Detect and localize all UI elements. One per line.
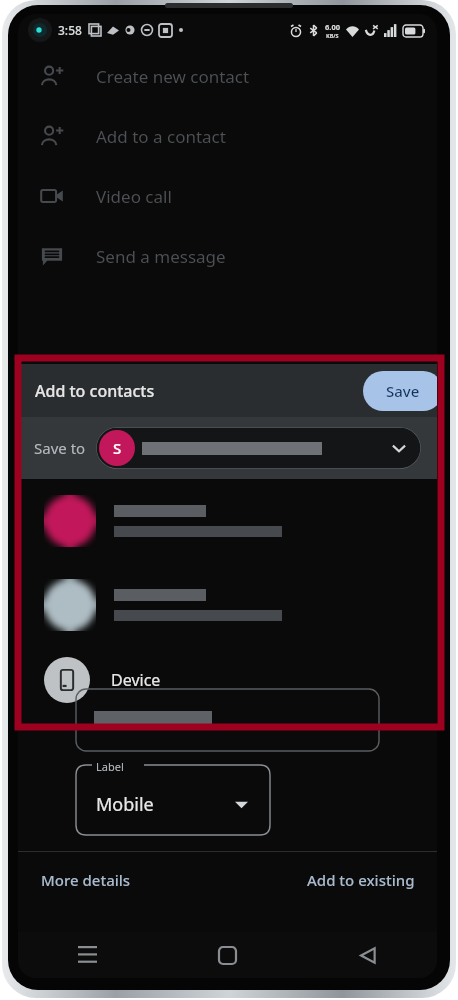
staticText: Save to [34, 438, 86, 458]
button[interactable]: Save [363, 371, 437, 411]
button[interactable]: Home [157, 932, 297, 978]
staticText: More details [41, 870, 131, 890]
button[interactable]: Add to a contact [18, 106, 437, 166]
staticText: Add to contacts [35, 380, 155, 402]
button[interactable]: More details [18, 852, 145, 908]
button[interactable]: Add to existing [293, 852, 437, 908]
staticText: Add to a contact [96, 125, 226, 148]
button[interactable]: Device [18, 647, 437, 713]
staticText: Device [111, 669, 161, 691]
staticText: Save [386, 381, 420, 401]
button[interactable]: S [96, 427, 421, 469]
button[interactable]: Label [76, 765, 270, 835]
staticText: Mobile [96, 792, 154, 817]
button[interactable]: Recents [18, 932, 157, 978]
staticText: Label [96, 759, 124, 774]
staticText: KB/S [326, 32, 339, 39]
staticText: Create new contact [96, 65, 250, 88]
staticText: 3:58 [58, 22, 82, 38]
staticText: Send a message [96, 245, 226, 268]
button[interactable] [18, 479, 437, 563]
button[interactable]: Video call [18, 166, 437, 226]
button[interactable]: Send a message [18, 226, 437, 286]
staticText: S [113, 438, 122, 458]
staticText: Video call [96, 185, 172, 208]
staticText: 6.00 [325, 22, 340, 32]
button[interactable]: Back [297, 932, 437, 978]
button[interactable]: Create new contact [18, 46, 437, 106]
staticText: Add to existing [307, 870, 415, 890]
button[interactable] [18, 563, 437, 647]
